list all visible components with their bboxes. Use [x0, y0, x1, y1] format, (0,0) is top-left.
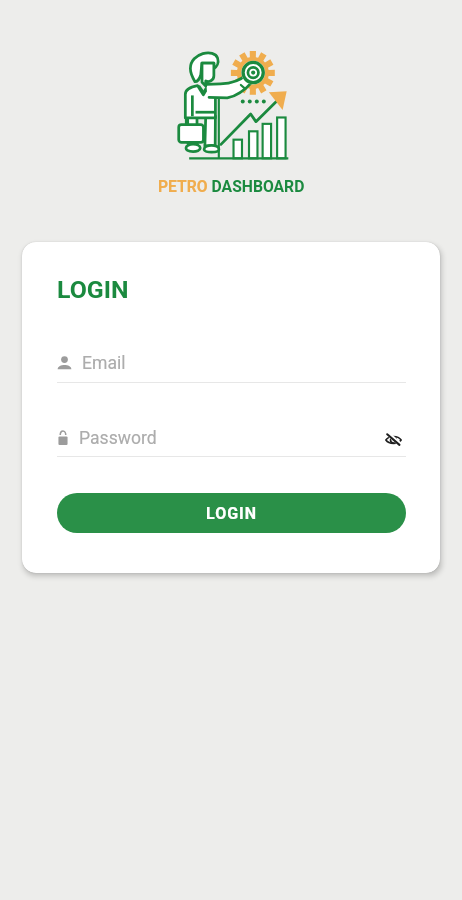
- staticText: Password: [79, 428, 157, 448]
- staticText: LOGIN: [206, 504, 258, 523]
- button[interactable]: Show password: [385, 430, 408, 450]
- staticText: Email: [82, 353, 126, 373]
- staticText: PETRO DASHBOARD: [158, 177, 305, 195]
- button[interactable]: LOGIN: [57, 493, 406, 533]
- staticText: LOGIN: [57, 275, 129, 304]
